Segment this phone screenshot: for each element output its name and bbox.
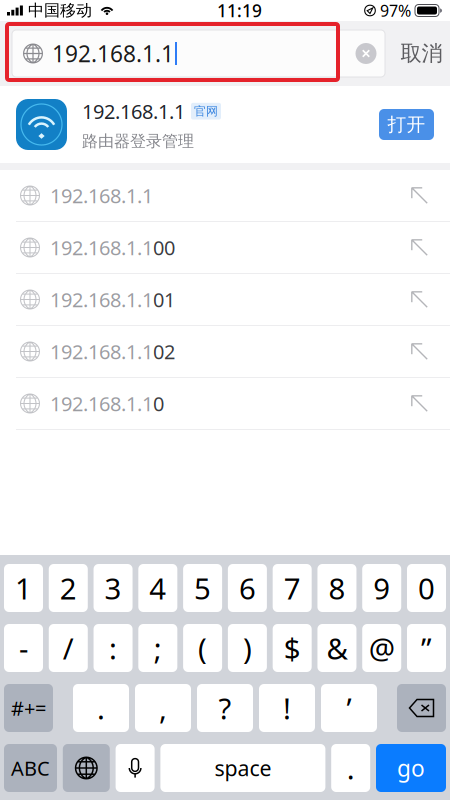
staticText: 192.168.1.1 [50,286,153,313]
staticText: ” [421,628,432,667]
button[interactable]: ) [228,624,267,672]
button[interactable]: 2 [49,564,88,612]
button[interactable]: space [160,744,325,792]
staticText: . [97,688,105,727]
button[interactable]: 192.168.1.1 [0,222,450,274]
staticText: 5 [194,568,211,607]
staticText: 02 [153,338,175,365]
staticText: 路由器登录管理 [82,131,194,151]
staticText: ? [218,688,231,727]
button[interactable]: / [49,624,88,672]
staticText: & [326,628,347,667]
button[interactable]: - [4,624,43,672]
button[interactable]: . [73,684,129,732]
button[interactable]: 192.168.1.1 [0,86,450,163]
button[interactable]: 7 [273,564,312,612]
staticText: - [19,628,28,667]
staticText: ) [243,628,252,667]
staticText: ABC [11,755,50,781]
staticText: 97% [376,0,415,21]
button[interactable]: Clear text [347,30,385,77]
staticText: 01 [153,286,175,313]
staticText: 192.168.1.1 [50,182,153,209]
staticText: 3 [105,568,122,607]
button[interactable]: 192.168.1.1 [0,170,450,222]
button[interactable]: & [317,624,356,672]
staticText: 8 [328,568,345,607]
staticText: 2 [60,568,77,607]
staticText: ; [154,628,162,667]
button[interactable]: ; [138,624,177,672]
staticText: #+= [11,695,46,721]
button[interactable]: 6 [228,564,267,612]
button[interactable]: : [94,624,133,672]
button[interactable]: @ [362,624,401,672]
button[interactable]: 8 [317,564,356,612]
staticText: 中国移动 [23,1,97,20]
button[interactable]: 192.168.1.1 [0,378,450,430]
staticText: . [347,748,355,787]
button[interactable]: ” [407,624,446,672]
staticText: 0 [418,568,435,607]
staticText: : [109,628,117,667]
staticText: 00 [153,234,175,261]
button[interactable]: 9 [362,564,401,612]
staticText: go [397,753,425,783]
button[interactable]: 3 [94,564,133,612]
button[interactable]: 0 [407,564,446,612]
button[interactable]: Delete [397,684,446,732]
button[interactable]: ? [197,684,253,732]
button[interactable]: 192.168.1.1 [0,274,450,326]
button[interactable]: ’ [321,684,377,732]
staticText: 11:19 [217,0,262,22]
button[interactable]: ! [259,684,315,732]
staticText: 9 [373,568,390,607]
button[interactable]: go [376,744,446,792]
button[interactable]: 取消 [393,30,450,77]
staticText: 192.168.1.1 [52,38,174,68]
staticText: 1 [15,568,32,607]
button[interactable]: ( [183,624,222,672]
staticText: 192.168.1.1 [50,234,153,261]
button[interactable]: ABC [4,744,57,792]
staticText: @ [369,628,395,667]
staticText: , [159,688,167,727]
staticText: 取消 [400,40,442,67]
staticText: ( [198,628,207,667]
staticText: / [63,628,74,667]
button[interactable]: Next keyboard [63,744,110,792]
button[interactable]: #+= [4,684,53,732]
staticText: 7 [284,568,301,607]
staticText: 192.168.1.1 [82,98,185,124]
button[interactable]: Dictate [116,744,155,792]
staticText: ’ [346,688,351,727]
button[interactable]: , [135,684,191,732]
button[interactable]: $ [273,624,312,672]
staticText: $ [284,628,301,667]
staticText: 官网 [194,104,218,118]
staticText: 0 [153,390,164,417]
button[interactable]: . [331,744,370,792]
staticText: 192.168.1.1 [50,338,153,365]
staticText: space [214,754,271,782]
staticText: 打开 [387,113,425,136]
button[interactable]: 192.168.1.1 [0,326,450,378]
staticText: 192.168.1.1 [50,390,153,417]
button[interactable]: 1 [4,564,43,612]
staticText: 6 [239,568,256,607]
staticText: ! [283,688,291,727]
staticText: 4 [149,568,166,607]
button[interactable]: 5 [183,564,222,612]
button[interactable]: 4 [138,564,177,612]
